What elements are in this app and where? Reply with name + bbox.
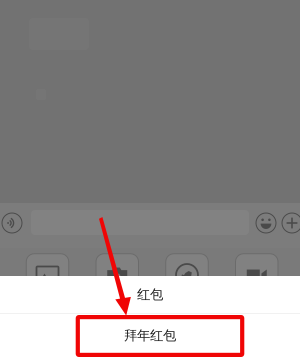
button[interactable]: More bbox=[279, 210, 300, 236]
staticText: 拜年红包 bbox=[124, 327, 176, 344]
button[interactable]: Emoji bbox=[253, 210, 279, 236]
button[interactable]: Voice call bbox=[166, 254, 208, 296]
button[interactable]: Camera bbox=[96, 254, 138, 296]
button[interactable]: Voice input bbox=[0, 208, 27, 238]
button[interactable]: Photos bbox=[26, 254, 69, 296]
staticText: 红包 bbox=[137, 286, 163, 303]
button[interactable]: 红包 bbox=[0, 276, 300, 313]
button[interactable]: Video call bbox=[235, 254, 278, 296]
button[interactable]: 拜年红包 bbox=[0, 314, 300, 357]
